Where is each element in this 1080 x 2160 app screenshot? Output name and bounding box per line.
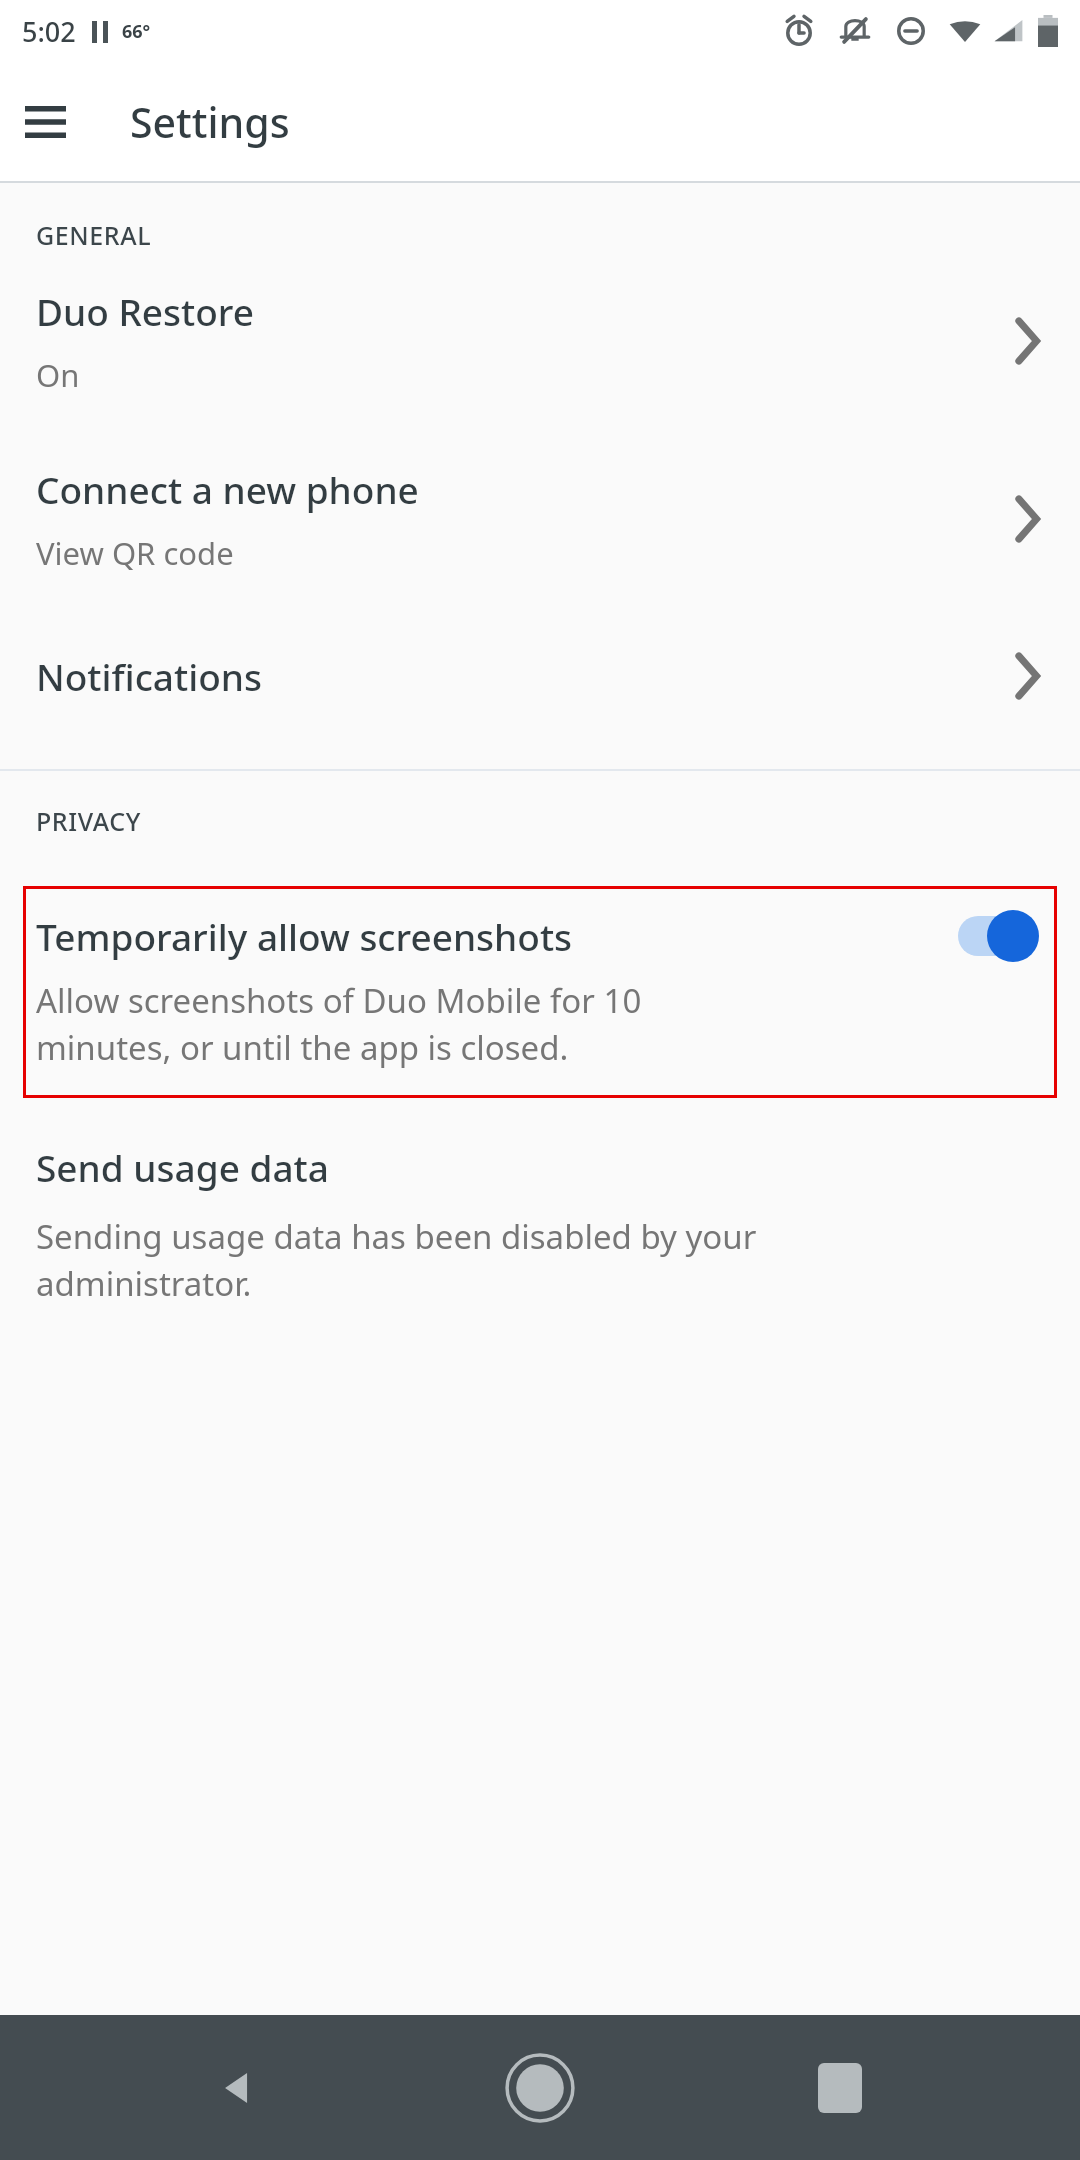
button[interactable]: Back	[180, 2028, 300, 2148]
staticText: GENERAL	[36, 218, 152, 252]
button[interactable]: Duo Restore	[0, 252, 1080, 430]
staticText: Sending usage data has been disabled by …	[36, 1214, 757, 1306]
staticText: Connect a new phone	[36, 464, 419, 514]
staticText: 66°	[122, 19, 151, 44]
button[interactable]: Send usage data	[0, 1142, 1080, 1306]
other: Open Duo Restore	[1010, 317, 1044, 365]
staticText: View QR code	[36, 532, 234, 574]
button[interactable]: Open navigation menu	[14, 91, 76, 153]
staticText: Temporarily allow screenshots	[36, 911, 942, 961]
staticText: Settings	[130, 94, 290, 150]
staticText: PRIVACY	[36, 804, 141, 838]
staticText: Duo Restore	[36, 286, 255, 336]
other: Open Connect a new phone	[1010, 495, 1044, 543]
staticText: Allow screenshots of Duo Mobile for 10 m…	[36, 978, 642, 1070]
button[interactable]: Notifications	[0, 608, 1080, 743]
staticText: On	[36, 354, 80, 396]
button[interactable]: Connect a new phone	[0, 430, 1080, 608]
button[interactable]: Recent apps	[780, 2028, 900, 2148]
button[interactable]: Home	[480, 2028, 600, 2148]
staticText: Notifications	[36, 651, 262, 701]
button[interactable]: Temporarily allow screenshots	[23, 886, 1057, 1098]
staticText: 5:02	[22, 13, 76, 50]
staticText: Send usage data	[36, 1142, 329, 1192]
other: Open Notifications	[1010, 652, 1044, 700]
